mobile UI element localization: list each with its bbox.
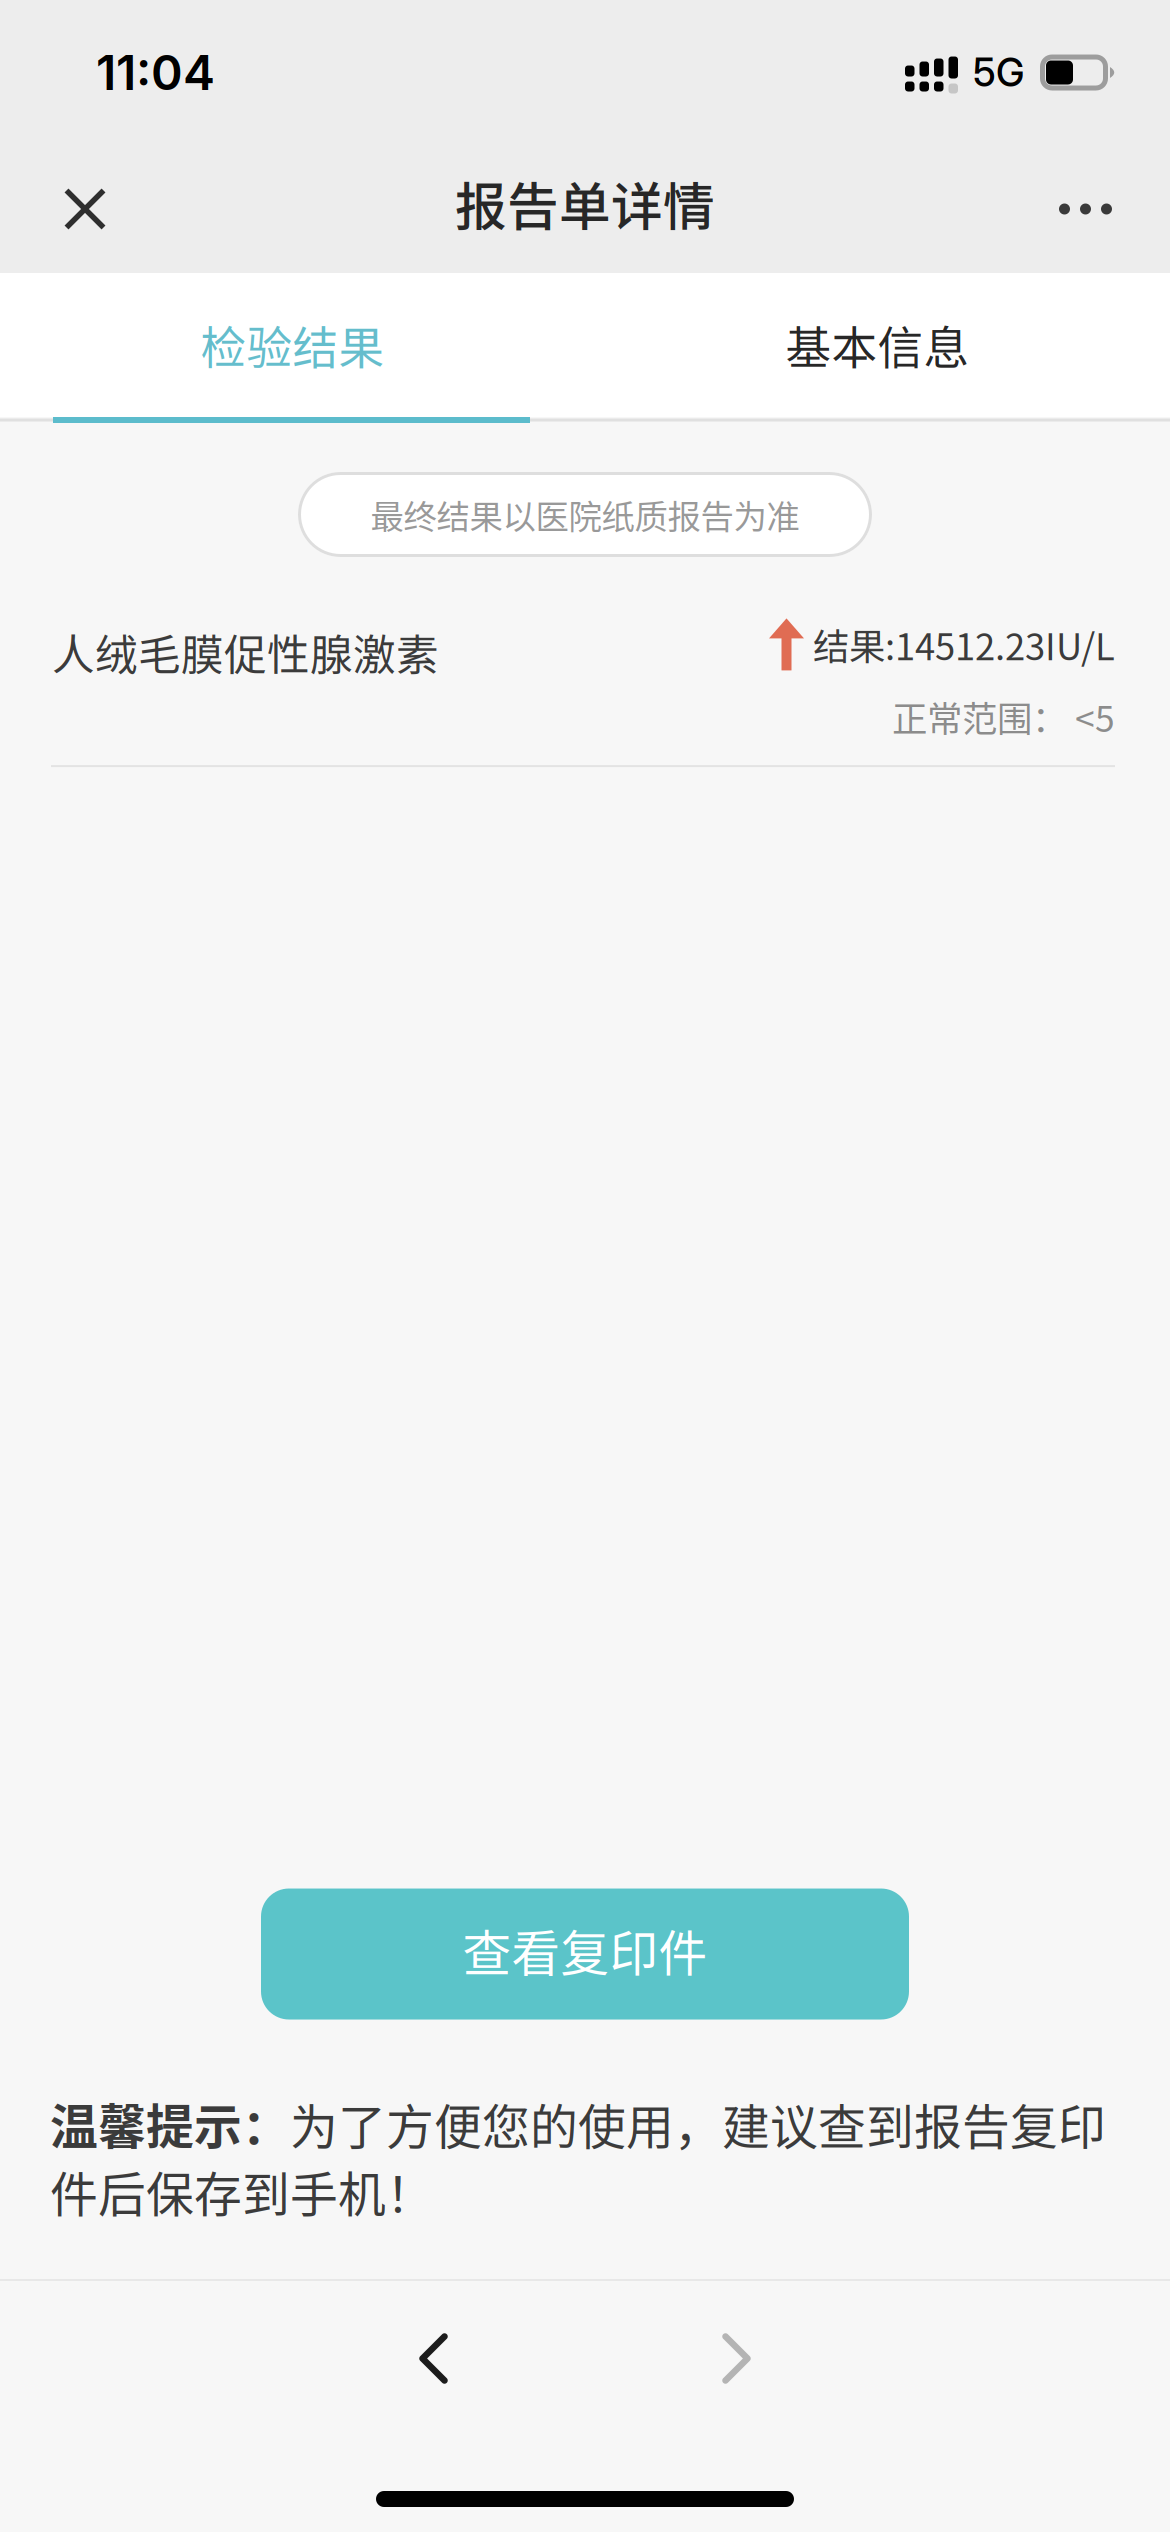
- button[interactable]: 上一份报告: [369, 2305, 497, 2411]
- staticText: 正常范围： <5: [892, 691, 1115, 742]
- button[interactable]: 更多: [1019, 145, 1170, 273]
- staticText: 报告单详情: [455, 166, 715, 240]
- staticText: 结果:14512.23IU/L: [813, 618, 1115, 671]
- button[interactable]: 查看复印件: [261, 1888, 909, 2019]
- button[interactable]: 基本信息: [585, 273, 1170, 417]
- button[interactable]: 下一份报告: [672, 2305, 800, 2411]
- staticText: 查看复印件: [462, 1915, 707, 1985]
- staticText: 温馨提示：为了方便您的使用，建议查到报告复印件后保存到手机！: [50, 2089, 1106, 2225]
- staticText: 基本信息: [785, 312, 969, 378]
- staticText: 最终结果以医院纸质报告为准: [370, 490, 799, 539]
- button[interactable]: 关闭: [0, 145, 146, 273]
- button[interactable]: 检验结果: [0, 273, 585, 417]
- staticText: 人绒毛膜促性腺激素: [52, 621, 439, 683]
- staticText: 11:04: [96, 43, 215, 102]
- staticText: 检验结果: [200, 312, 384, 378]
- staticText: 5G: [973, 49, 1024, 96]
